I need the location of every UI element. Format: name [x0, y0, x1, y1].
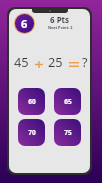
staticText: 6 Pts — [50, 14, 70, 25]
button[interactable]: 6 — [15, 14, 34, 33]
staticText: ? — [82, 53, 88, 70]
staticText: 75 — [64, 128, 72, 137]
button[interactable]: 75 — [54, 119, 81, 146]
button[interactable]: 70 — [18, 119, 45, 146]
staticText: Next Point: 2 — [48, 25, 73, 30]
staticText: 70 — [28, 128, 36, 137]
staticText: 6 — [21, 16, 28, 31]
staticText: 45 — [14, 53, 29, 70]
staticText: 65 — [64, 97, 72, 106]
staticText: 25 — [48, 53, 63, 70]
staticText: 60 — [28, 97, 36, 106]
button[interactable]: 60 — [18, 88, 45, 115]
button[interactable]: 65 — [54, 88, 81, 115]
